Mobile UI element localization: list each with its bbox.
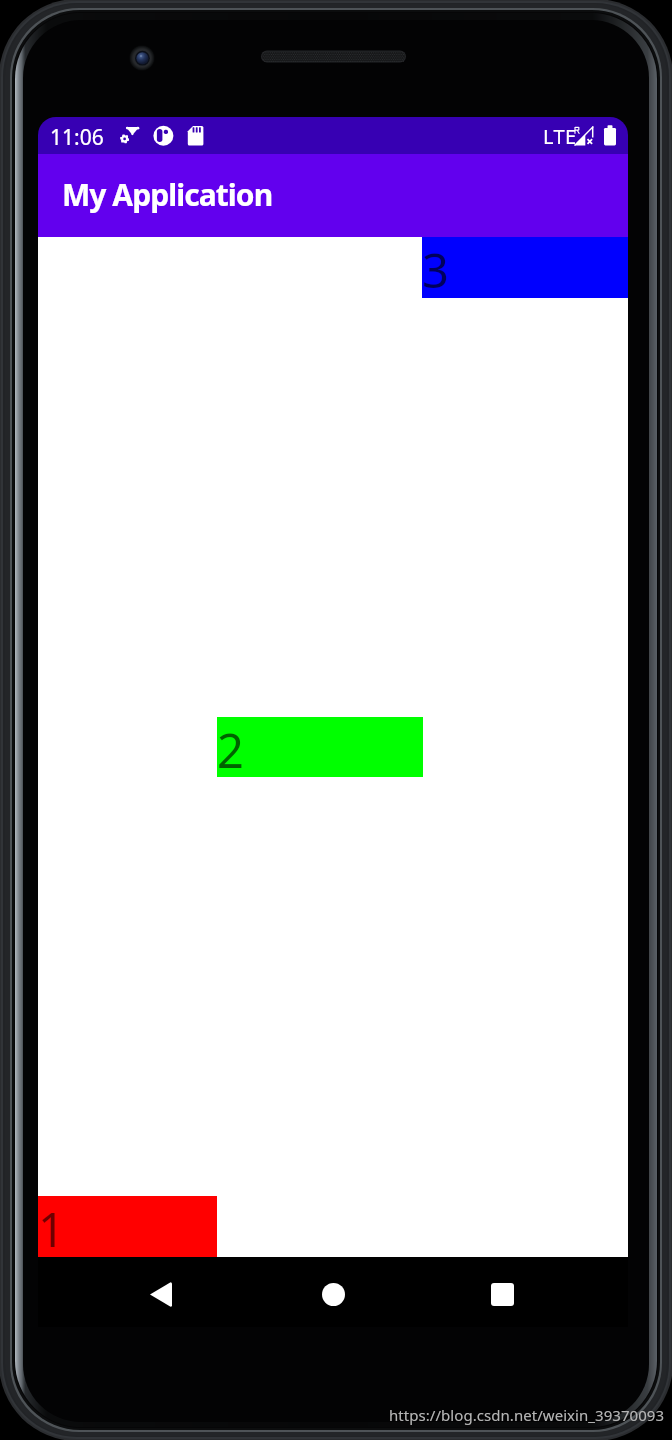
button[interactable]: 1 [38,1196,217,1257]
staticText: https://blog.csdn.net/weixin_39370093 [389,1405,665,1425]
staticText: LTE [543,123,577,150]
staticText: 3 [422,238,449,299]
staticText: My Application [62,174,273,215]
button[interactable]: My Application [38,154,628,237]
button[interactable]: 2 [217,717,423,777]
staticText: 11:06 [50,123,104,152]
staticText: 2 [217,718,244,778]
button[interactable]: Home [309,1270,357,1318]
button[interactable]: Recent apps [478,1270,526,1318]
staticText: 1 [38,1197,65,1258]
button[interactable]: Back [137,1270,185,1318]
button[interactable]: 3 [422,237,628,298]
